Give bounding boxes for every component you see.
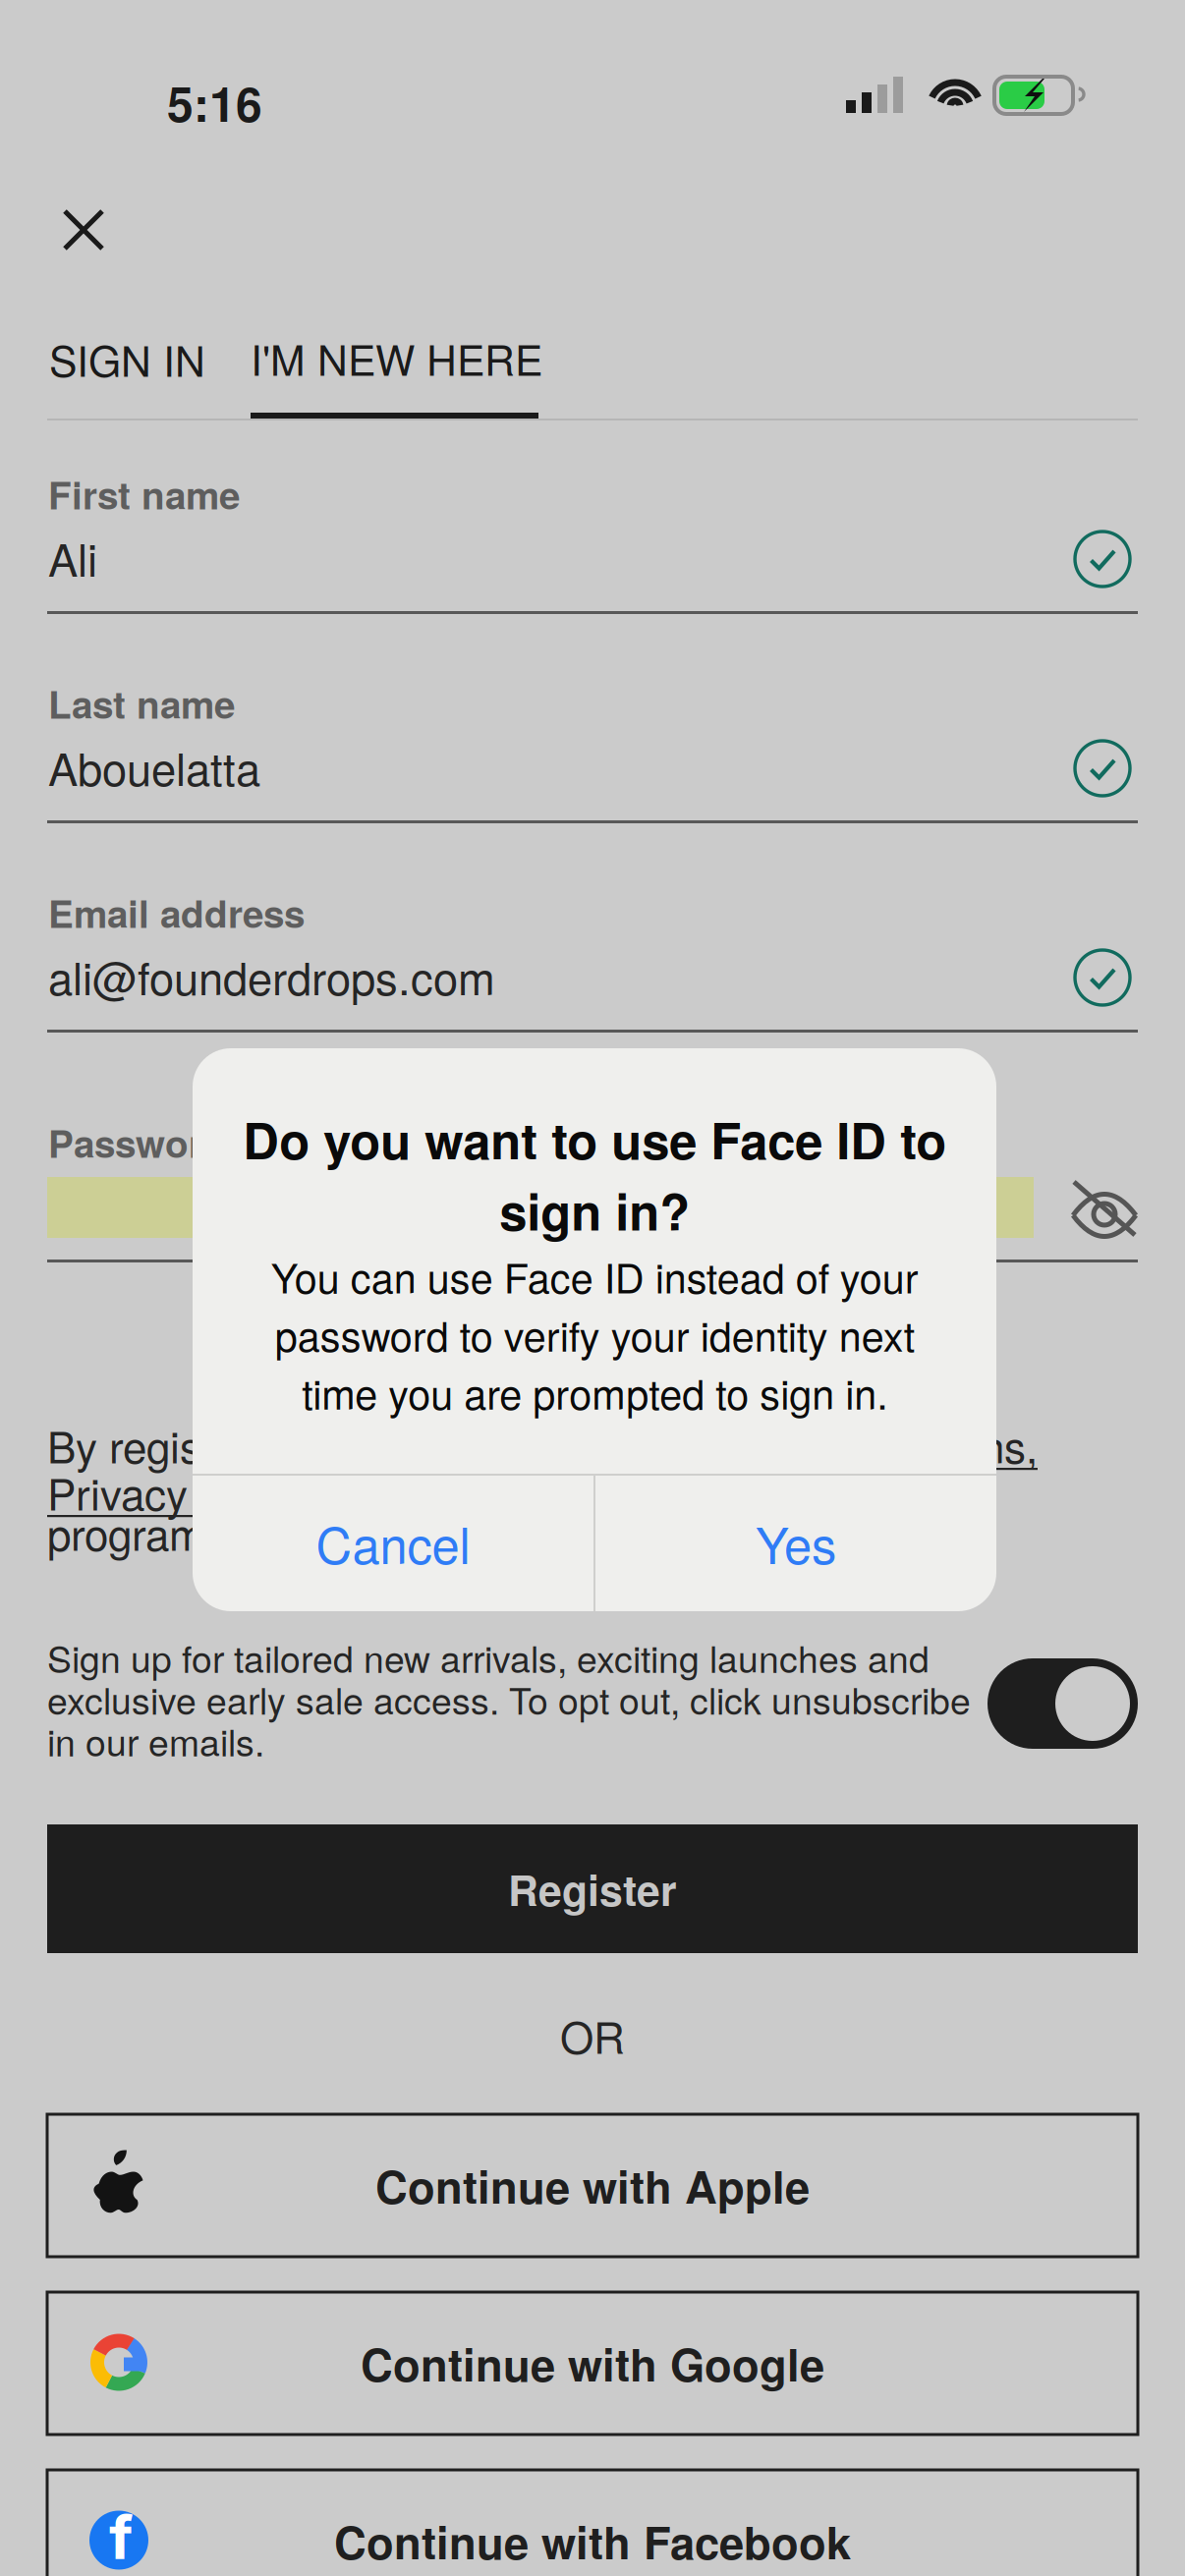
button[interactable]: Cancel <box>193 1474 593 1611</box>
button[interactable]: Continue with Google <box>47 2292 1138 2435</box>
staticText: Password <box>48 1115 227 1170</box>
staticText: ali@founderdrops.com <box>48 944 495 1008</box>
staticText: f <box>109 2501 133 2574</box>
staticText: Do you want to use Face ID to sign in? <box>243 1103 946 1246</box>
button[interactable]: I'M NEW HERE <box>251 324 565 416</box>
staticText: You can use Face ID instead of your pass… <box>271 1247 918 1421</box>
staticText: Cancel <box>316 1507 470 1578</box>
staticText: programme. <box>47 1501 277 1563</box>
button[interactable]: Continue with Facebook <box>47 2470 1138 2576</box>
staticText: Sign up for tailored new arrivals, excit… <box>47 1631 971 1767</box>
staticText: OR <box>560 2004 625 2066</box>
button[interactable]: Continue with Apple <box>47 2114 1138 2257</box>
staticText: Register <box>508 1859 677 1919</box>
staticText: Last name <box>48 676 235 730</box>
staticText: SIGN IN <box>49 329 205 389</box>
staticText: 5:16 <box>167 69 262 136</box>
button[interactable]: Register <box>47 1824 1138 1953</box>
staticText: Ali <box>48 526 97 589</box>
staticText: I'M NEW HERE <box>251 328 542 388</box>
staticText: First name <box>48 467 240 521</box>
staticText: Continue with Facebook <box>334 2509 851 2573</box>
button[interactable]: Close <box>36 183 131 277</box>
staticText: Continue with Google <box>361 2331 824 2395</box>
staticText: Yes <box>756 1507 836 1578</box>
staticText: Email address <box>48 885 305 940</box>
staticText: By registering, you agree to our Terms &… <box>47 1414 1038 1476</box>
button[interactable]: Marketing emails, on <box>987 1658 1138 1749</box>
staticText: Abouelatta <box>48 735 260 799</box>
button[interactable]: Yes <box>595 1474 996 1611</box>
staticText: Continue with Apple <box>375 2154 810 2217</box>
button[interactable]: Show password <box>1061 1168 1148 1245</box>
button[interactable]: SIGN IN <box>49 314 228 403</box>
staticText: Privacy and Cookies Policy and loyalty <box>47 1461 778 1523</box>
